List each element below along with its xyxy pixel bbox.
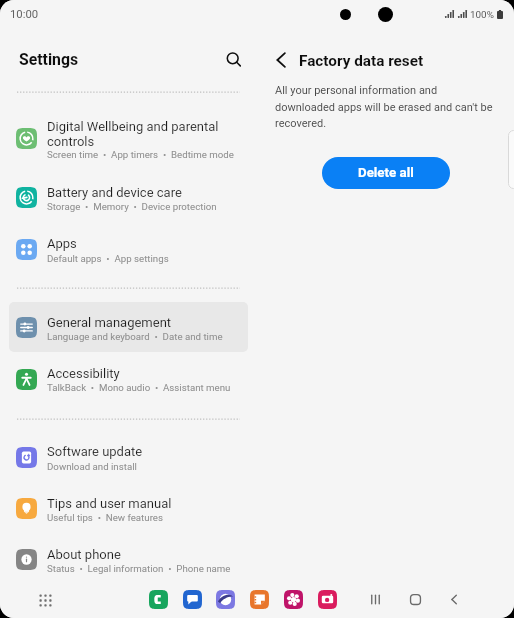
button[interactable] (9, 224, 248, 274)
button[interactable]: MSG (183, 590, 202, 609)
staticText: General management (47, 315, 172, 330)
button[interactable]: Delete all (322, 157, 450, 189)
button[interactable] (9, 302, 248, 352)
staticText: Digital Wellbeing and parental controls (47, 119, 219, 150)
staticText: TalkBack • Mono audio • Assistant menu (47, 382, 231, 393)
staticText: Factory data reset (299, 52, 424, 70)
button[interactable]: Back (271, 47, 297, 73)
staticText: All your personal information and downlo… (275, 84, 497, 130)
staticText: 100% (470, 9, 494, 21)
staticText: Useful tips • New features (47, 512, 163, 523)
staticText: Storage • Memory • Device protection (47, 201, 217, 212)
button[interactable]: Home (403, 587, 427, 611)
button[interactable]: All apps (33, 588, 57, 612)
staticText: Language and keyboard • Date and time (47, 331, 223, 342)
staticText: Settings (19, 50, 79, 69)
staticText: Delete all (358, 165, 414, 181)
button[interactable]: Recents (363, 587, 387, 611)
button[interactable] (9, 535, 248, 585)
staticText: Apps (47, 236, 77, 251)
button[interactable]: CAM (318, 590, 337, 609)
button[interactable]: NOTE (250, 590, 269, 609)
staticText: About phone (47, 547, 121, 562)
button[interactable] (9, 484, 248, 534)
staticText: Download and install (47, 461, 137, 472)
button[interactable] (9, 354, 248, 404)
button[interactable]: Back (442, 587, 466, 611)
button[interactable]: PHONE (149, 590, 168, 609)
button[interactable]: FLOWER (284, 590, 303, 609)
button[interactable] (9, 432, 248, 482)
button[interactable] (9, 109, 248, 169)
staticText: Tips and user manual (47, 496, 172, 511)
staticText: 10:00 (10, 8, 39, 21)
staticText: Battery and device care (47, 185, 182, 200)
staticText: Status • Legal information • Phone name (47, 563, 231, 574)
button[interactable]: Search (220, 45, 250, 75)
button[interactable]: NET (216, 590, 235, 609)
button[interactable]: Edge panel (508, 130, 514, 189)
staticText: Default apps • App settings (47, 253, 169, 264)
staticText: Screen time • App timers • Bedtime mode (47, 149, 234, 160)
staticText: Software update (47, 444, 143, 459)
button[interactable] (9, 173, 248, 223)
staticText: Accessibility (47, 366, 120, 381)
